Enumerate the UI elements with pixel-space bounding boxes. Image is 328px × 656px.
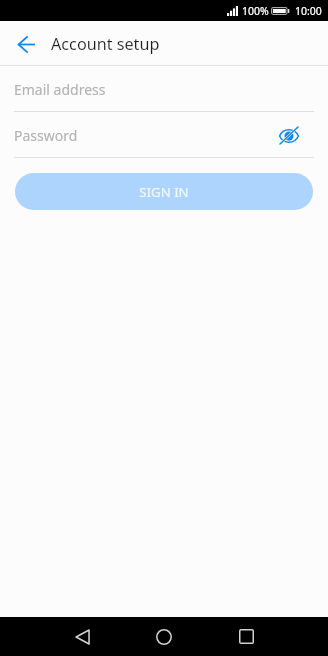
staticText: 10:00 bbox=[295, 4, 322, 18]
staticText: Password bbox=[14, 126, 78, 145]
button[interactable]: Back bbox=[41, 617, 123, 656]
button[interactable]: Show password bbox=[275, 121, 303, 149]
staticText: 100% bbox=[242, 4, 269, 18]
button[interactable]: Password bbox=[14, 122, 314, 158]
button[interactable]: Back bbox=[5, 21, 47, 65]
button[interactable]: SIGN IN bbox=[15, 173, 313, 210]
button[interactable]: Home bbox=[123, 617, 205, 656]
staticText: Account setup bbox=[51, 33, 160, 55]
staticText: Email address bbox=[14, 80, 106, 99]
button[interactable]: Recents bbox=[205, 617, 287, 656]
staticText: SIGN IN bbox=[139, 183, 189, 201]
button[interactable]: Email address bbox=[14, 76, 314, 112]
